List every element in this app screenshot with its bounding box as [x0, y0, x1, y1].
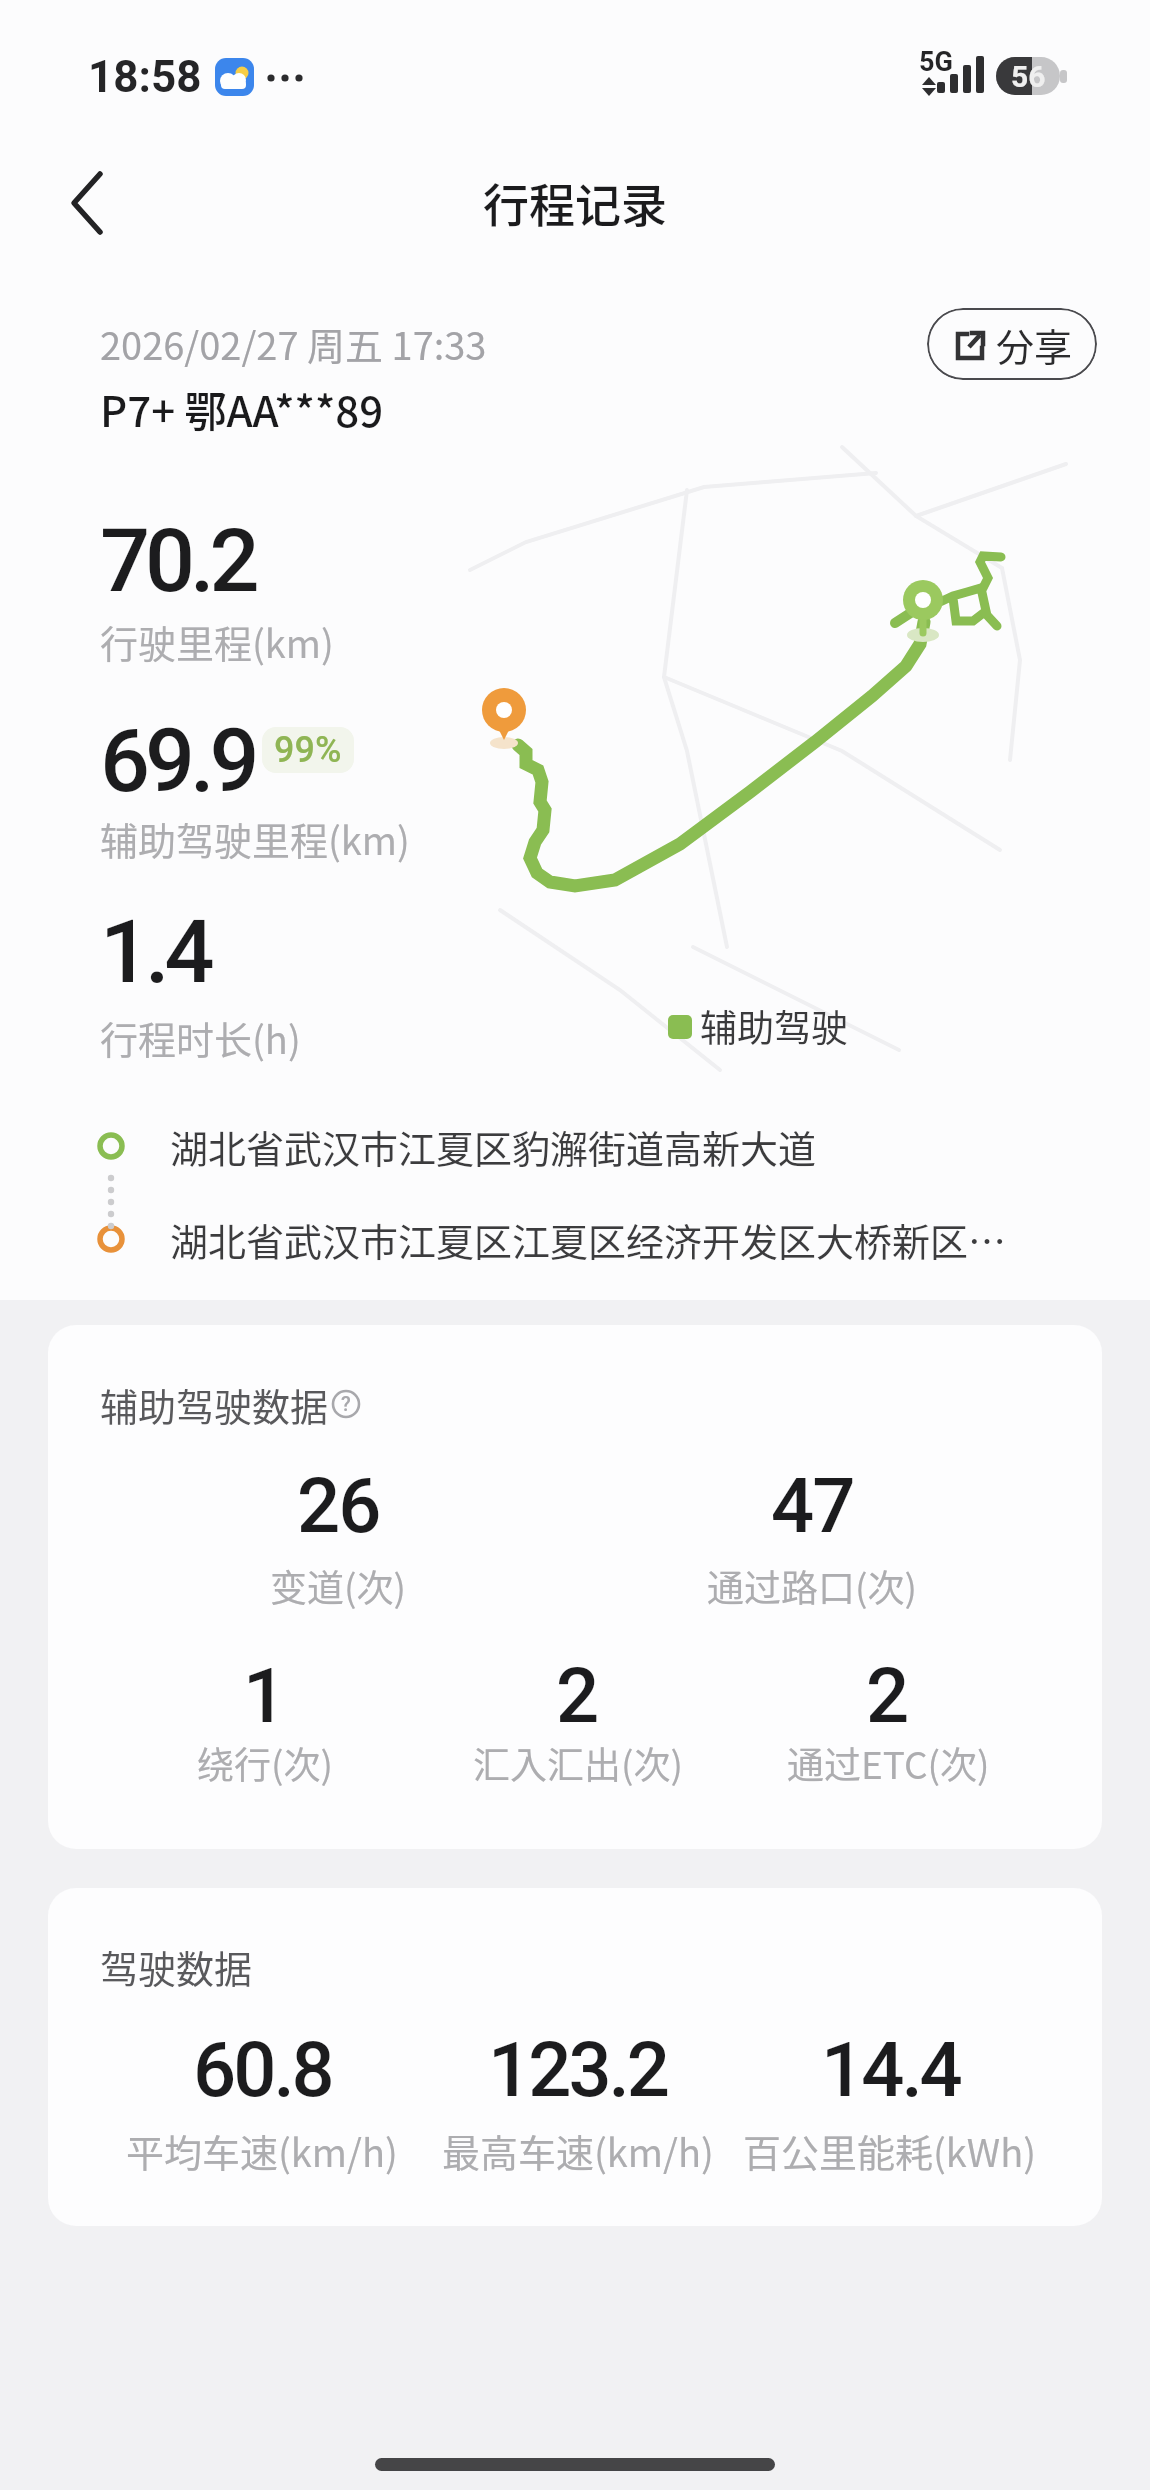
staticText: 69.9: [100, 709, 255, 812]
staticText: 绕行(次): [197, 1736, 334, 1790]
staticText: 百公里能耗(kWh): [743, 2123, 1037, 2178]
staticText: 通过ETC(次): [787, 1736, 990, 1790]
staticText: 湖北省武汉市江夏区江夏区经济开发区大桥新区…: [170, 1212, 1007, 1267]
staticText: 2026/02/27 周五 17:33: [100, 316, 487, 371]
staticText: 1.4: [100, 900, 210, 1003]
staticText: 1: [243, 1651, 287, 1740]
staticText: 最高车速(km/h): [442, 2123, 714, 2178]
staticText: 汇入汇出(次): [473, 1736, 684, 1790]
staticText: 辅助驾驶里程(km): [100, 811, 410, 866]
staticText: 通过路口(次): [707, 1559, 918, 1613]
staticText: 14.4: [821, 2025, 960, 2114]
staticText: P7+ 鄂AA***89: [100, 378, 384, 439]
staticText: 56: [1011, 59, 1046, 94]
staticText: 2: [866, 1651, 910, 1740]
staticText: 变道(次): [270, 1559, 407, 1613]
staticText: ?: [341, 1392, 351, 1415]
staticText: 70.2: [100, 509, 255, 612]
staticText: 99%: [274, 729, 342, 771]
staticText: 47: [771, 1461, 854, 1550]
staticText: 行程时长(h): [100, 1010, 301, 1065]
button[interactable]: 分享: [927, 308, 1097, 380]
staticText: 行程记录: [483, 169, 667, 236]
staticText: 分享: [996, 317, 1073, 372]
staticText: 辅助驾驶: [700, 999, 848, 1053]
button[interactable]: [55, 165, 130, 240]
staticText: 行驶里程(km): [100, 614, 334, 669]
staticText: 123.2: [488, 2025, 668, 2114]
staticText: 18:58: [88, 51, 202, 103]
staticText: 26: [297, 1461, 380, 1550]
staticText: 2: [556, 1651, 600, 1740]
staticText: 辅助驾驶数据: [100, 1377, 329, 1432]
staticText: 驾驶数据: [100, 1939, 253, 1994]
staticText: 平均车速(km/h): [126, 2123, 398, 2178]
staticText: 60.8: [193, 2025, 332, 2114]
staticText: 5G: [919, 46, 953, 78]
staticText: 湖北省武汉市江夏区豹澥街道高新大道: [170, 1119, 817, 1174]
